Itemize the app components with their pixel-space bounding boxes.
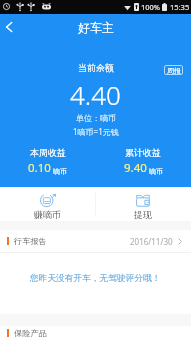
staticText: 累计收益 [125, 147, 161, 158]
staticText: 保险产品 [14, 328, 47, 338]
staticText: 4.40 [70, 77, 121, 112]
staticText: 好车主 [78, 20, 114, 35]
staticText: 嘀币 [53, 167, 67, 176]
staticText: 当前余额 [78, 62, 114, 73]
staticText: 15:35 [170, 2, 190, 12]
staticText: 周报 [167, 66, 181, 75]
staticText: 本周收益 [30, 147, 66, 158]
staticText: 2016/11/30 [130, 236, 173, 247]
button[interactable]: 赚嘀币 [0, 187, 95, 221]
button[interactable]: 周报 [164, 65, 183, 75]
staticText: 9.40 [124, 160, 147, 176]
button[interactable]: Back [0, 14, 18, 40]
staticText: 嘀币 [149, 167, 163, 176]
button[interactable]: 保险产品 [0, 326, 191, 340]
staticText: 行车报告 [14, 236, 47, 246]
staticText: 提现 [134, 209, 152, 220]
staticText: 单位：嘀币 [76, 113, 116, 123]
button[interactable]: 行车报告 [0, 230, 191, 252]
staticText: 100% [141, 2, 161, 12]
staticText: 0.10 [28, 160, 51, 176]
staticText: 1嘀币=1元钱 [73, 126, 119, 137]
staticText: 赚嘀币 [34, 209, 61, 220]
staticText: 您昨天没有开车，无驾驶评分哦！ [30, 273, 161, 284]
button[interactable]: 提现 [95, 187, 191, 221]
